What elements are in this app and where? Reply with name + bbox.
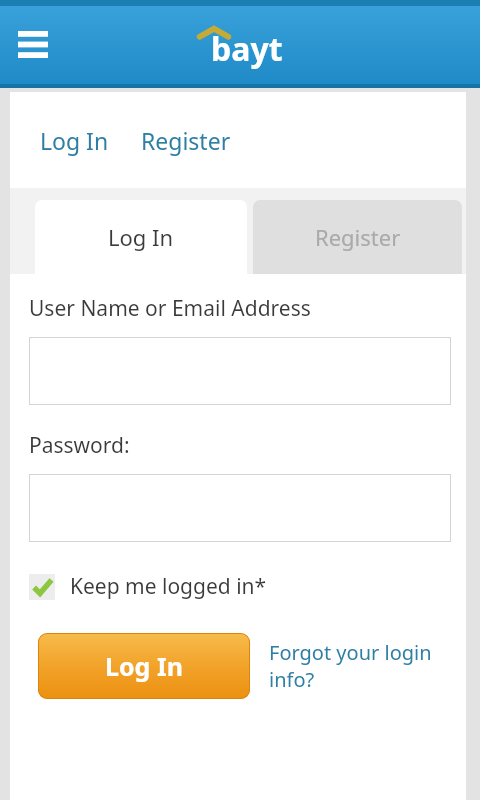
staticText: Log In [108,222,174,252]
staticText: Password: [29,431,130,460]
staticText: Register [141,125,231,156]
staticText: Keep me logged in* [70,572,267,601]
button[interactable]: Open navigation menu [6,17,60,71]
staticText: User Name or Email Address [29,294,311,323]
button[interactable]: Log In [36,117,113,164]
button[interactable]: Log In [35,200,247,274]
staticText: bayt [211,27,283,71]
staticText: Log In [105,649,183,683]
staticText: Log In [40,125,109,156]
button[interactable] [29,474,451,542]
button[interactable]: Register [253,200,462,274]
staticText: Forgot your login info? [269,639,449,693]
button[interactable]: Register [137,117,235,164]
button[interactable]: Forgot your login info? [267,631,451,701]
staticText: Register [315,222,401,252]
button[interactable]: Keep me logged in* [29,570,267,603]
button[interactable] [29,337,451,405]
button[interactable]: Log In [38,633,250,699]
